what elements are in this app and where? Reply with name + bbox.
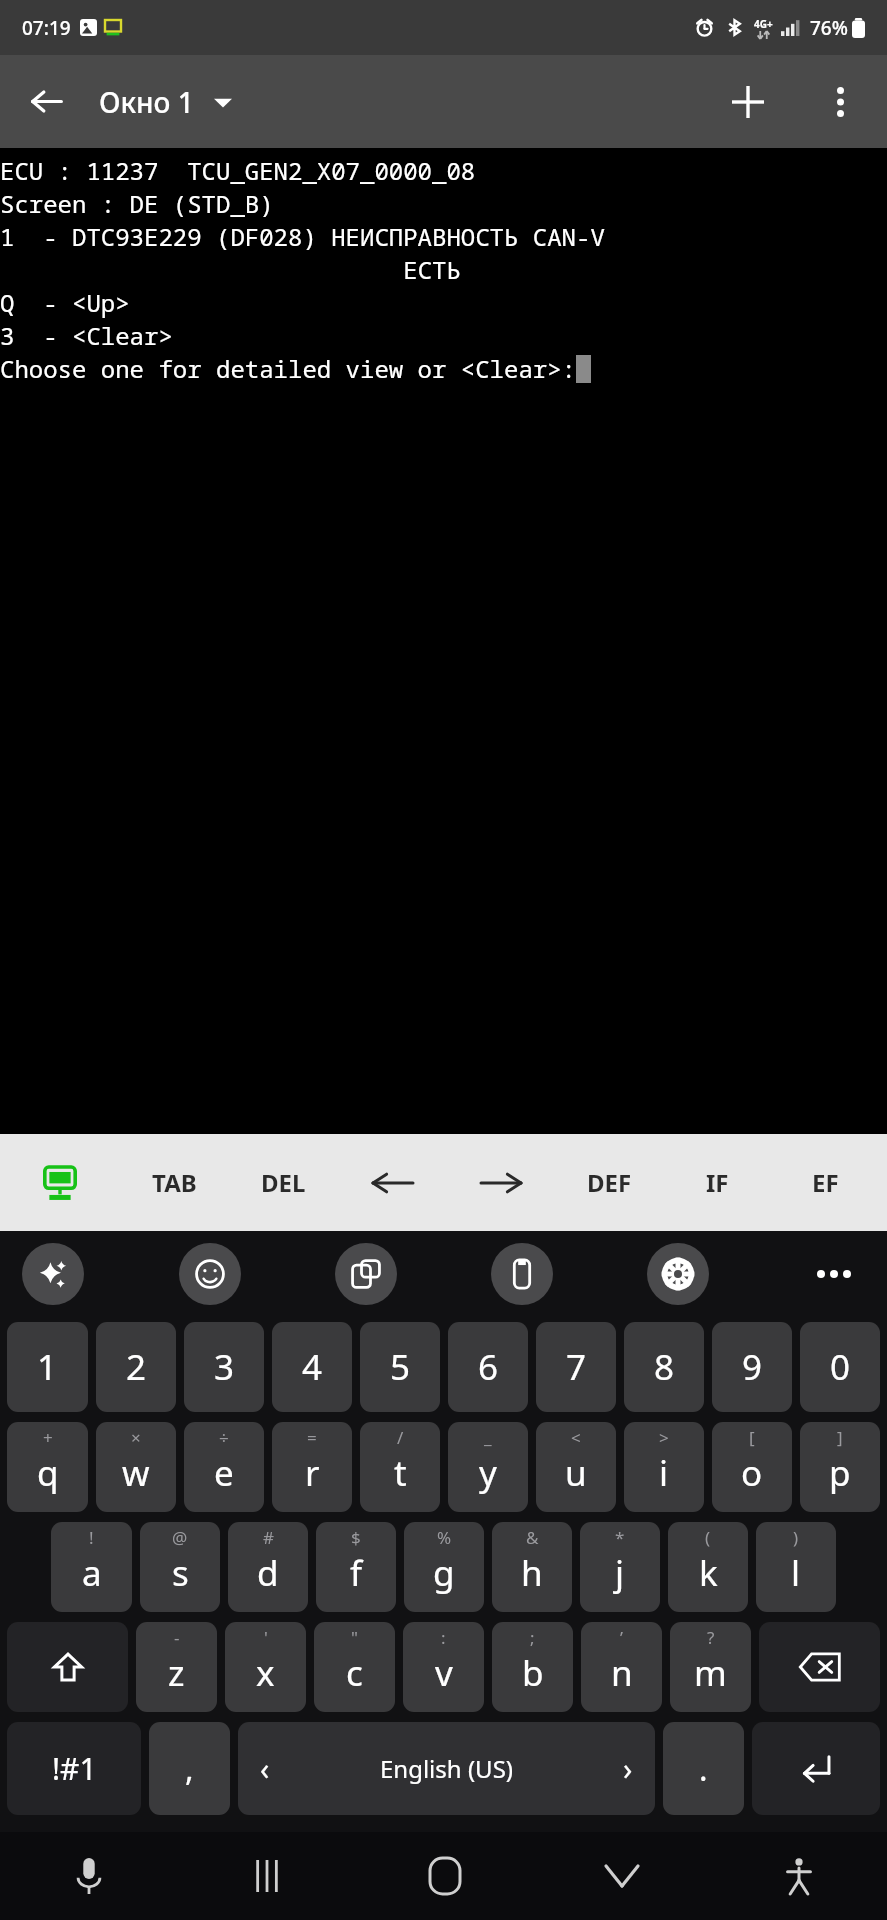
button[interactable]: Recent apps [178, 1832, 356, 1920]
button[interactable]: 2 [96, 1322, 176, 1412]
staticText: ЕСТЬ [0, 253, 461, 286]
button[interactable]: Voice input [0, 1832, 178, 1920]
button[interactable]: 6 [448, 1322, 528, 1412]
button[interactable]: * [580, 1522, 660, 1612]
button[interactable]: New window [701, 55, 794, 148]
button[interactable]: Emoji [179, 1243, 241, 1305]
button[interactable]: × [96, 1422, 176, 1512]
staticText: ) [793, 1526, 799, 1549]
button[interactable]: . [663, 1722, 744, 1815]
button[interactable]: DEL [229, 1134, 338, 1231]
staticText: m [694, 1649, 727, 1697]
button[interactable]: 4 [272, 1322, 352, 1412]
staticText: + [43, 1426, 53, 1449]
staticText: y [479, 1449, 497, 1497]
button[interactable]: !#1 [7, 1722, 141, 1815]
button[interactable]: 9 [712, 1322, 792, 1412]
button[interactable]: Left [338, 1134, 447, 1231]
staticText: s [172, 1549, 189, 1597]
staticText: Choose one for detailed view or <Clear>: [0, 352, 576, 385]
staticText: 2 [126, 1343, 147, 1391]
staticText: k [699, 1549, 718, 1597]
button[interactable]: Translate [335, 1243, 397, 1305]
button[interactable]: Backspace [759, 1622, 880, 1712]
button[interactable]: Enter [752, 1722, 880, 1815]
button[interactable]: Settings [647, 1243, 709, 1305]
button[interactable]: + [7, 1422, 88, 1512]
button[interactable]: " [314, 1622, 395, 1712]
button[interactable]: ' [225, 1622, 306, 1712]
staticText: 1 [37, 1343, 58, 1391]
button[interactable]: 0 [800, 1322, 880, 1412]
button[interactable]: Suggestions [22, 1243, 84, 1305]
button[interactable]: ; [492, 1622, 573, 1712]
button[interactable]: & [492, 1522, 572, 1612]
staticText: English (US) [270, 1752, 623, 1785]
button[interactable]: : [403, 1622, 484, 1712]
other: Right [481, 1170, 521, 1196]
button[interactable]: DEF [555, 1134, 663, 1231]
staticText: q [37, 1449, 59, 1497]
button[interactable]: Clipboard [491, 1243, 553, 1305]
button[interactable]: < [536, 1422, 616, 1512]
button[interactable]: Right [447, 1134, 555, 1231]
button[interactable]: @ [140, 1522, 220, 1612]
button[interactable]: - [136, 1622, 217, 1712]
staticText: EF [812, 1166, 839, 1199]
button[interactable]: Home [356, 1832, 533, 1920]
staticText: / [397, 1426, 404, 1449]
button[interactable]: 7 [536, 1322, 616, 1412]
staticText: j [615, 1549, 625, 1597]
staticText: 1 - DTC93E229 (DF028) НЕИСПРАВНОСТЬ CAN-… [0, 220, 605, 253]
staticText: p [829, 1449, 851, 1497]
button[interactable]: ) [756, 1522, 836, 1612]
staticText: r [305, 1449, 320, 1497]
button[interactable]: ? [670, 1622, 751, 1712]
staticText: ECU : 11237 TCU_GEN2_X07_0000_08 [0, 154, 476, 187]
button[interactable]: Space, English (US) [238, 1722, 655, 1815]
staticText: g [433, 1549, 455, 1597]
button[interactable]: Hide keyboard [533, 1832, 710, 1920]
button[interactable]: More [803, 1243, 865, 1305]
button[interactable]: ’ [581, 1622, 662, 1712]
button[interactable]: # [228, 1522, 308, 1612]
staticText: $ [351, 1526, 361, 1549]
staticText: DEF [587, 1166, 632, 1199]
button[interactable]: More options [794, 55, 887, 148]
button[interactable]: $ [316, 1522, 396, 1612]
button[interactable]: ÷ [184, 1422, 264, 1512]
staticText: n [611, 1649, 633, 1697]
button[interactable]: 8 [624, 1322, 704, 1412]
staticText: ! [89, 1526, 94, 1549]
staticText: f [350, 1549, 363, 1597]
button[interactable]: , [149, 1722, 230, 1815]
staticText: ( [705, 1526, 711, 1549]
button[interactable]: 5 [360, 1322, 440, 1412]
button[interactable]: = [272, 1422, 352, 1512]
button[interactable]: TAB [120, 1134, 229, 1231]
staticText: d [257, 1549, 279, 1597]
button[interactable]: _ [448, 1422, 528, 1512]
staticText: !#1 [52, 1748, 97, 1789]
button[interactable]: ( [668, 1522, 748, 1612]
button[interactable]: % [404, 1522, 484, 1612]
button[interactable]: Back [0, 55, 93, 148]
button[interactable]: Окно 1 [93, 83, 238, 121]
button[interactable]: EF [771, 1134, 879, 1231]
button[interactable]: Shift [7, 1622, 128, 1712]
staticText: 07:19 [22, 15, 71, 41]
button[interactable]: Accessibility [710, 1832, 887, 1920]
staticText: : [441, 1626, 446, 1649]
staticText: 76% [810, 15, 848, 41]
button[interactable]: [ [712, 1422, 792, 1512]
button[interactable]: > [624, 1422, 704, 1512]
button[interactable]: Terminal [0, 1134, 120, 1231]
staticText: # [263, 1526, 274, 1549]
button[interactable]: / [360, 1422, 440, 1512]
button[interactable]: 3 [184, 1322, 264, 1412]
button[interactable]: ] [800, 1422, 880, 1512]
staticText: 3 [214, 1343, 235, 1391]
button[interactable]: ! [51, 1522, 132, 1612]
button[interactable]: 1 [7, 1322, 88, 1412]
button[interactable]: IF [663, 1134, 771, 1231]
